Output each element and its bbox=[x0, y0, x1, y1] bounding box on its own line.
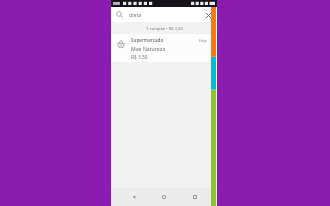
button[interactable]: Home bbox=[156, 189, 172, 205]
staticText: Mae Natureza bbox=[131, 45, 166, 52]
staticText: R$ 3,50 bbox=[131, 54, 148, 61]
staticText: Supermercado bbox=[131, 37, 164, 43]
other: Market bbox=[114, 37, 128, 51]
other: Search bbox=[115, 10, 124, 19]
staticText: Hoje bbox=[199, 38, 207, 43]
staticText: 1 compra • R$ 3,50 bbox=[146, 26, 183, 32]
button[interactable]: Market bbox=[111, 34, 217, 62]
button[interactable]: Clear search bbox=[203, 10, 213, 20]
button[interactable]: Recent apps bbox=[187, 189, 203, 205]
button[interactable]: Back bbox=[126, 189, 142, 205]
staticText: dieta bbox=[129, 11, 142, 18]
button[interactable]: Search bbox=[111, 7, 217, 22]
